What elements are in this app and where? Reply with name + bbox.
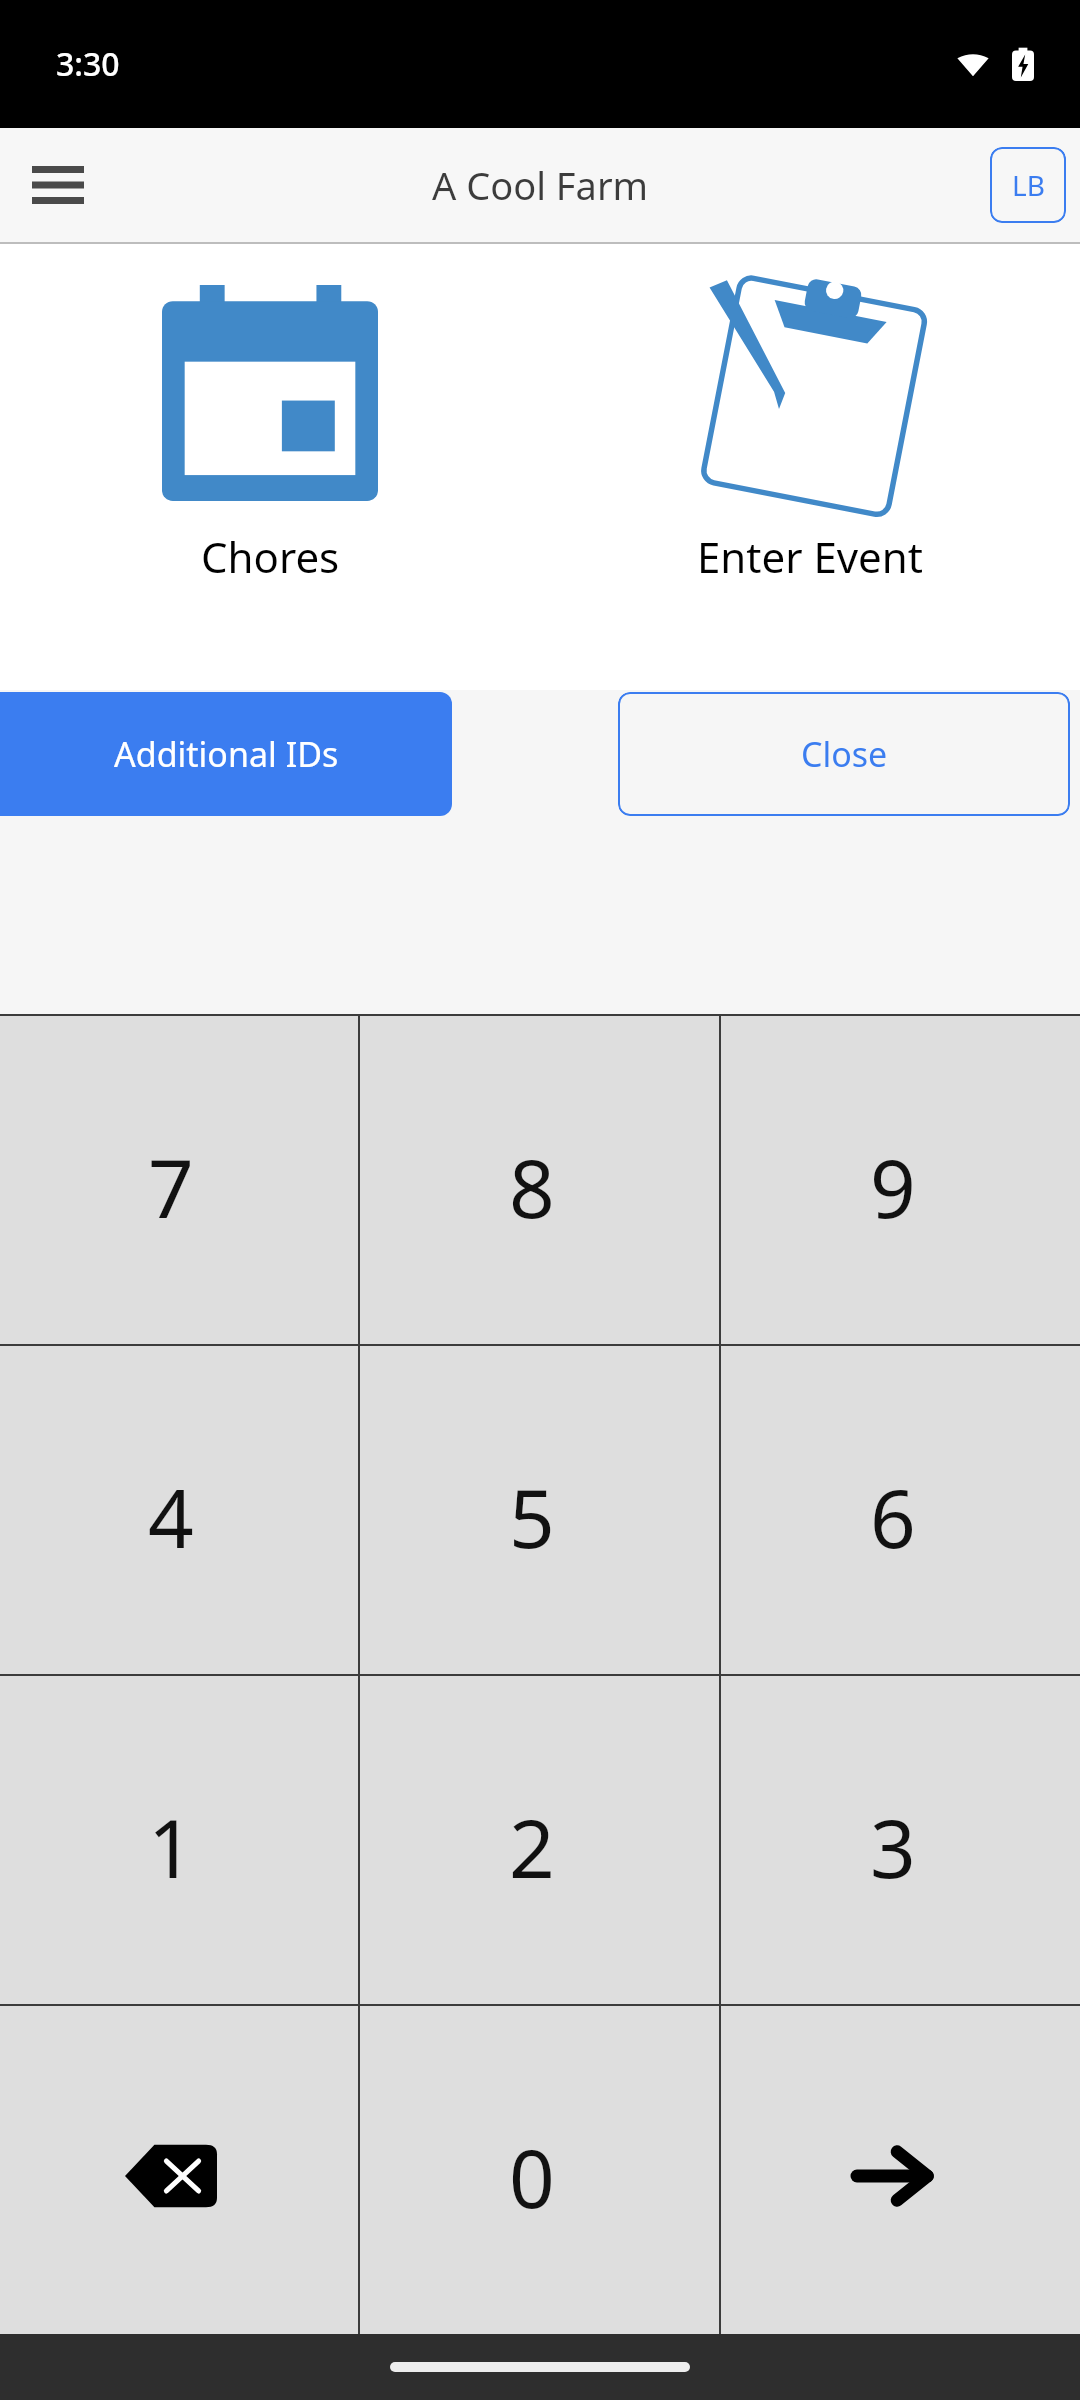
button[interactable]: 0 — [360, 2006, 719, 2334]
staticText: 3:30 — [56, 42, 120, 86]
button[interactable]: 8 — [360, 1016, 719, 1344]
staticText: 8 — [509, 1132, 555, 1241]
button[interactable]: LB — [990, 147, 1066, 223]
staticText: A Cool Farm — [432, 159, 649, 211]
staticText: 5 — [509, 1462, 555, 1571]
staticText: Close — [801, 731, 888, 777]
staticText: 3 — [870, 1792, 916, 1901]
staticText: 7 — [148, 1132, 194, 1241]
staticText: Chores — [201, 528, 340, 585]
staticText: 4 — [148, 1462, 194, 1571]
staticText: 0 — [509, 2122, 555, 2231]
staticText: 2 — [509, 1792, 555, 1901]
button[interactable]: Close — [618, 692, 1070, 816]
staticText: 6 — [870, 1462, 916, 1571]
button[interactable]: 2 — [360, 1676, 719, 2004]
button[interactable]: 1 — [0, 1676, 358, 2004]
staticText: Additional IDs — [114, 731, 339, 777]
button[interactable]: 9 — [721, 1016, 1080, 1344]
button[interactable]: 4 — [0, 1346, 358, 1674]
staticText: LB — [1012, 166, 1045, 204]
button[interactable]: Open navigation menu — [18, 145, 98, 225]
button[interactable]: Additional IDs — [0, 692, 452, 816]
button[interactable]: Submit — [721, 2006, 1080, 2334]
button[interactable]: 3 — [721, 1676, 1080, 2004]
button[interactable]: Backspace — [0, 2006, 358, 2334]
button[interactable]: 5 — [360, 1346, 719, 1674]
staticText: 1 — [148, 1792, 194, 1901]
staticText: Enter Event — [697, 528, 923, 585]
button[interactable]: 6 — [721, 1346, 1080, 1674]
button[interactable]: Chores — [0, 244, 540, 690]
button[interactable]: 7 — [0, 1016, 358, 1344]
staticText: 9 — [870, 1132, 916, 1241]
button[interactable]: Enter Event — [540, 244, 1080, 690]
